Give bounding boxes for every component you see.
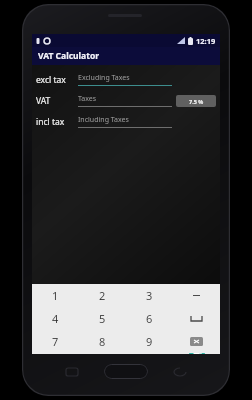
staticText: 12:19 bbox=[196, 36, 216, 46]
staticText: VAT Calculator bbox=[38, 50, 100, 62]
button[interactable]: 8 bbox=[79, 330, 126, 353]
button[interactable]: 2 bbox=[79, 284, 126, 307]
button[interactable]: 9 bbox=[126, 330, 173, 353]
staticText: 5 bbox=[99, 311, 106, 326]
button[interactable]: Including Taxes bbox=[78, 113, 172, 130]
staticText: 7 bbox=[52, 334, 59, 349]
staticText: 2 bbox=[99, 288, 106, 303]
button[interactable]: 4 bbox=[32, 307, 79, 330]
button[interactable]: Backspace bbox=[173, 330, 220, 353]
staticText: excl tax bbox=[36, 74, 66, 86]
button[interactable]: 1 bbox=[32, 284, 79, 307]
button[interactable]: 7.5 % bbox=[176, 95, 216, 107]
staticText: Excluding Taxes bbox=[78, 73, 130, 83]
staticText: 6 bbox=[146, 311, 153, 326]
button[interactable]: Excluding Taxes bbox=[78, 71, 172, 88]
button[interactable]: 6 bbox=[126, 307, 173, 330]
button[interactable]: Next bbox=[173, 353, 220, 354]
staticText: 7.5 % bbox=[189, 98, 204, 105]
button[interactable]: 5 bbox=[79, 307, 126, 330]
button[interactable]: Taxes bbox=[78, 92, 172, 109]
button[interactable]: Space bbox=[173, 307, 220, 330]
staticText: VAT bbox=[36, 95, 51, 107]
staticText: Including Taxes bbox=[78, 115, 129, 125]
staticText: 8 bbox=[99, 334, 106, 349]
button[interactable]: 7 bbox=[32, 330, 79, 353]
staticText: Taxes bbox=[78, 94, 97, 104]
button[interactable]: Minus bbox=[173, 284, 220, 307]
staticText: incl tax bbox=[36, 116, 65, 128]
button[interactable]: 3 bbox=[126, 284, 173, 307]
staticText: 4 bbox=[52, 311, 59, 326]
staticText: 3 bbox=[146, 288, 153, 303]
staticText: 1 bbox=[52, 288, 59, 303]
staticText: 9 bbox=[146, 334, 153, 349]
